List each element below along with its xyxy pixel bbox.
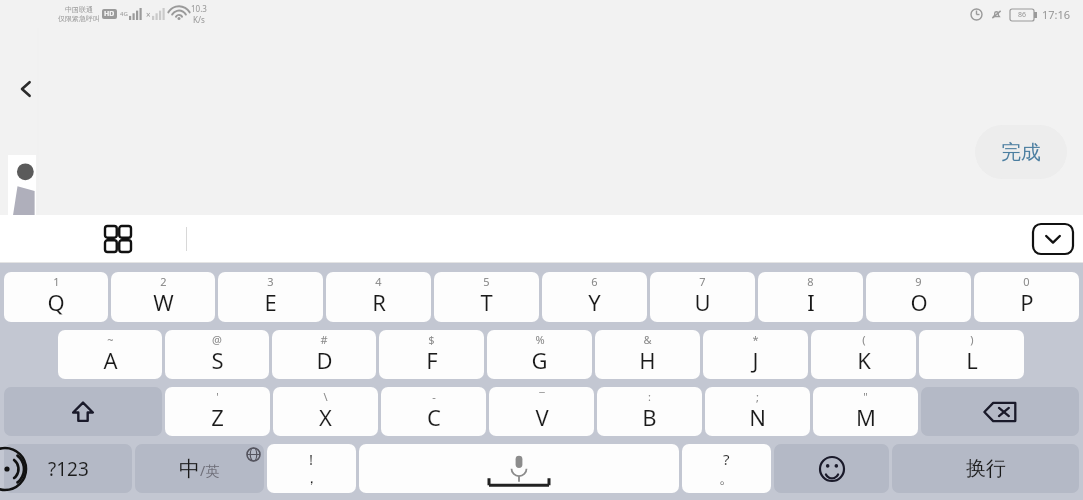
button[interactable]: 1 (4, 272, 108, 322)
staticText: U (694, 287, 711, 317)
staticText: 4G (120, 10, 128, 18)
staticText: 17:16 (1042, 7, 1071, 22)
staticText: 86 (1018, 10, 1027, 20)
staticText: B (642, 402, 657, 432)
staticText: 换行 (966, 456, 1006, 481)
staticText: $ (428, 332, 435, 347)
button[interactable]: : (597, 387, 702, 436)
button[interactable]: 6 (542, 272, 647, 322)
staticText: × (146, 9, 151, 20)
staticText: 4 (375, 274, 382, 289)
staticText: Q (47, 287, 65, 317)
staticText: 仅限紧急呼叫 (58, 14, 100, 23)
staticText: ? (723, 449, 730, 469)
button[interactable]: 9 (866, 272, 971, 322)
button[interactable]: \ (273, 387, 378, 436)
staticText: 3 (267, 274, 274, 289)
staticText: % (535, 332, 545, 347)
button[interactable]: Emoji (774, 444, 889, 493)
button[interactable]: 4 (326, 272, 431, 322)
staticText: V (535, 402, 549, 432)
button[interactable]: @ (165, 330, 269, 379)
button[interactable]: 换行 (892, 444, 1079, 493)
staticText: R (372, 287, 386, 317)
button[interactable]: 3 (218, 272, 323, 322)
button[interactable]: * (703, 330, 808, 379)
staticText: : (648, 389, 651, 404)
button[interactable]: Back (10, 73, 42, 105)
button[interactable]: ' (165, 387, 270, 436)
staticText: H (639, 345, 656, 375)
button[interactable]: Backspace (921, 387, 1079, 436)
staticText: ) (970, 332, 974, 347)
button[interactable]: - (381, 387, 486, 436)
staticText: G (531, 345, 548, 375)
staticText: I (807, 287, 815, 317)
staticText: " (863, 389, 868, 404)
button[interactable]: ¯ (489, 387, 594, 436)
staticText: 9 (915, 274, 922, 289)
button[interactable]: Accessibility (0, 446, 28, 492)
button[interactable]: ; (705, 387, 810, 436)
staticText: @ (212, 332, 222, 347)
staticText: X (319, 402, 332, 432)
staticText: W (153, 287, 174, 317)
staticText: K (857, 345, 871, 375)
staticText: 。 (719, 469, 734, 488)
staticText: P (1020, 287, 1034, 317)
staticText: 6 (591, 274, 598, 289)
button[interactable]: % (487, 330, 592, 379)
button[interactable]: $ (379, 330, 484, 379)
button[interactable]: Hide keyboard (1033, 224, 1073, 254)
staticText: J (752, 345, 759, 375)
button[interactable]: 5 (434, 272, 539, 322)
button[interactable]: 2 (111, 272, 215, 322)
staticText: 5 (483, 274, 490, 289)
button[interactable]: 中 (135, 444, 264, 493)
button[interactable]: 7 (650, 272, 755, 322)
staticText: & (643, 332, 652, 347)
staticText: Y (588, 287, 601, 317)
staticText: ' (216, 389, 219, 404)
button[interactable]: ?123 (4, 444, 132, 493)
button[interactable]: ) (919, 330, 1024, 379)
button[interactable]: 完成 (975, 125, 1067, 179)
staticText: 2 (160, 274, 167, 289)
staticText: M (856, 402, 876, 432)
button[interactable]: 8 (758, 272, 863, 322)
staticText: K/s (193, 14, 205, 25)
staticText: O (910, 287, 928, 317)
staticText: C (427, 402, 441, 432)
staticText: 10.3 (191, 3, 207, 14)
staticText: 8 (807, 274, 814, 289)
staticText: S (211, 345, 224, 375)
button[interactable]: " (813, 387, 918, 436)
staticText: 7 (699, 274, 706, 289)
staticText: L (966, 345, 978, 375)
button[interactable]: Space (359, 444, 679, 493)
staticText: 中国联通 (65, 5, 93, 14)
staticText: /英 (200, 461, 220, 480)
staticText: N (749, 402, 766, 432)
staticText: E (264, 287, 277, 317)
button[interactable]: ! (267, 444, 356, 493)
button[interactable]: & (595, 330, 700, 379)
staticText: ( (862, 332, 866, 347)
button[interactable]: Keyboard layouts (92, 215, 144, 263)
staticText: 0 (1023, 274, 1030, 289)
staticText: ~ (107, 332, 114, 347)
staticText: Z (211, 402, 224, 432)
button[interactable]: 0 (974, 272, 1079, 322)
button[interactable]: ~ (58, 330, 162, 379)
button[interactable]: ( (811, 330, 916, 379)
staticText: ; (756, 389, 759, 404)
button[interactable]: ? (682, 444, 771, 493)
staticText: ! (309, 449, 314, 469)
staticText: 中 (179, 456, 200, 482)
button[interactable]: Shift (4, 387, 162, 436)
staticText: HD (104, 9, 115, 19)
button[interactable]: # (272, 330, 376, 379)
staticText: T (480, 287, 493, 317)
staticText: F (426, 345, 438, 375)
